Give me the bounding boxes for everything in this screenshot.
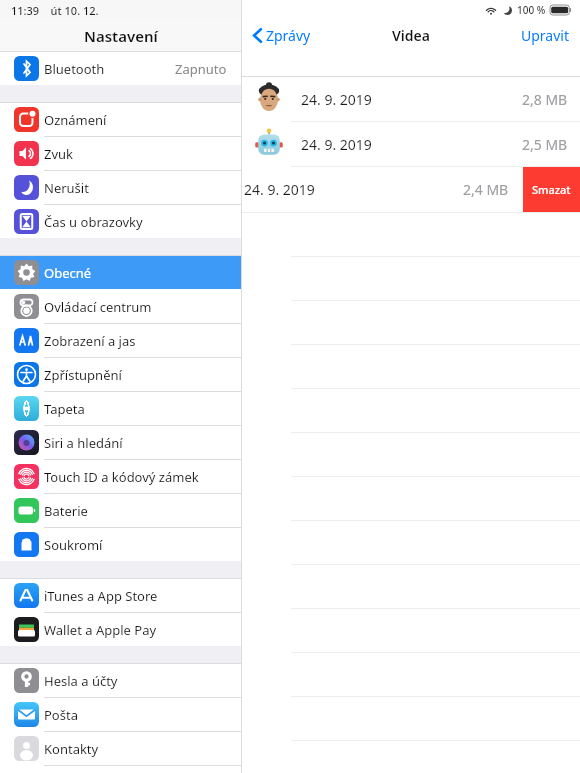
- staticText: Kontakty: [44, 740, 99, 758]
- staticText: Ovládací centrum: [44, 298, 152, 316]
- button[interactable]: Zprávy: [253, 26, 311, 45]
- button[interactable]: Oznámení: [0, 103, 241, 136]
- staticText: Pošta: [44, 706, 78, 724]
- staticText: Upravit: [521, 26, 569, 45]
- staticText: Zvuk: [44, 145, 74, 163]
- staticText: 24. 9. 2019: [301, 135, 372, 154]
- staticText: Nerušit: [44, 179, 89, 197]
- button[interactable]: Nerušit: [0, 171, 241, 204]
- staticText: Wallet a Apple Pay: [44, 621, 157, 639]
- button[interactable]: Soukromí: [0, 528, 241, 561]
- button[interactable]: Baterie: [0, 494, 241, 527]
- button[interactable]: Touch ID a kódový zámek: [0, 460, 241, 493]
- button[interactable]: Hesla a účty: [0, 664, 241, 697]
- staticText: Zapnuto: [175, 60, 227, 78]
- button[interactable]: Bluetooth: [0, 52, 241, 85]
- staticText: Touch ID a kódový zámek: [44, 468, 199, 486]
- staticText: Hesla a účty: [44, 672, 118, 690]
- staticText: 2,8 MB: [522, 90, 568, 109]
- staticText: Nastavení: [84, 26, 158, 46]
- staticText: Baterie: [44, 502, 88, 520]
- staticText: 24. 9. 2019: [244, 180, 315, 199]
- staticText: Tapeta: [44, 400, 85, 418]
- button[interactable]: Zvuk: [0, 137, 241, 170]
- staticText: 2,5 MB: [522, 135, 568, 154]
- button[interactable]: Siri a hledání: [0, 426, 241, 459]
- staticText: 100 %: [517, 3, 546, 17]
- staticText: Obecné: [44, 264, 92, 282]
- button[interactable]: Zobrazení a jas: [0, 324, 241, 357]
- staticText: Oznámení: [44, 111, 107, 129]
- button[interactable]: Zpřístupnění: [0, 358, 241, 391]
- button[interactable]: 24. 9. 2019: [242, 167, 523, 212]
- staticText: 24. 9. 2019: [301, 90, 372, 109]
- button[interactable]: Ovládací centrum: [0, 290, 241, 323]
- button[interactable]: Smazat: [523, 167, 580, 212]
- button[interactable]: 24. 9. 2019: [242, 122, 580, 166]
- button[interactable]: Tapeta: [0, 392, 241, 425]
- staticText: Zprávy: [266, 26, 311, 45]
- button[interactable]: Obecné: [0, 256, 241, 289]
- button[interactable]: Wallet a Apple Pay: [0, 613, 241, 646]
- button[interactable]: Pošta: [0, 698, 241, 731]
- button[interactable]: Čas u obrazovky: [0, 205, 241, 238]
- staticText: Soukromí: [44, 536, 103, 554]
- button[interactable]: Kontakty: [0, 732, 241, 765]
- button[interactable]: 24. 9. 2019: [242, 77, 580, 121]
- staticText: Zobrazení a jas: [44, 332, 136, 350]
- staticText: iTunes a App Store: [44, 587, 158, 605]
- staticText: Čas u obrazovky: [44, 213, 143, 231]
- staticText: 2,4 MB: [463, 180, 509, 199]
- staticText: Videa: [392, 26, 430, 45]
- staticText: Smazat: [532, 182, 571, 197]
- staticText: 11:39 út 10. 12.: [11, 3, 99, 18]
- staticText: Siri a hledání: [44, 434, 123, 452]
- button[interactable]: Upravit: [521, 26, 569, 45]
- button[interactable]: iTunes a App Store: [0, 579, 241, 612]
- staticText: Bluetooth: [44, 60, 105, 78]
- staticText: Zpřístupnění: [44, 366, 122, 384]
